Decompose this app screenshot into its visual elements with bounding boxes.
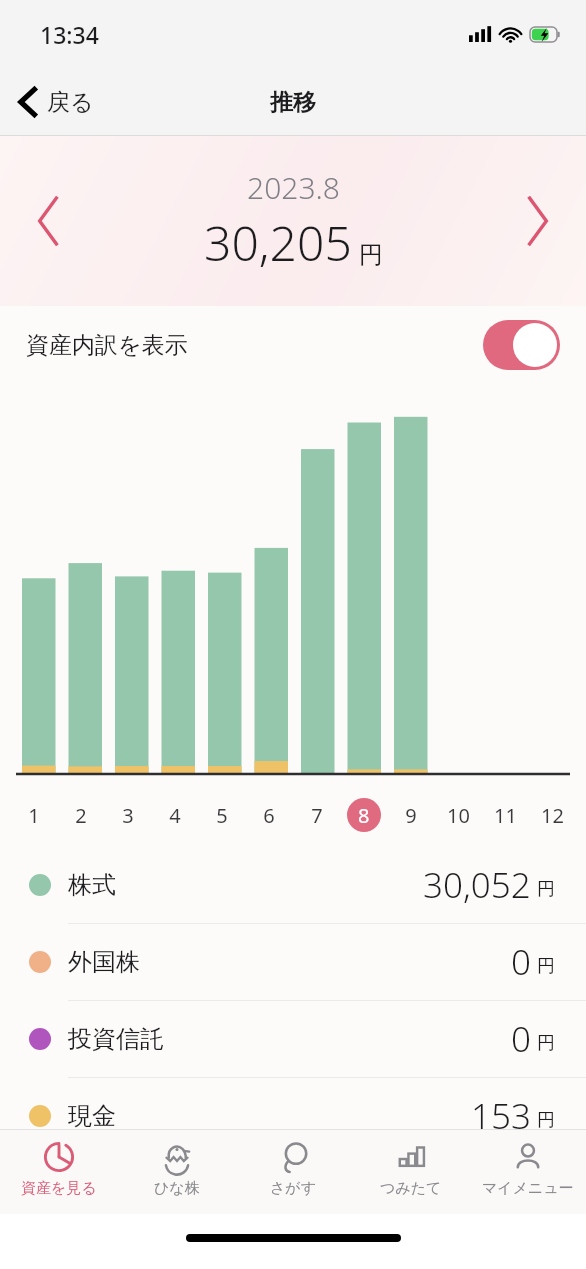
staticText: 円 (537, 1032, 555, 1055)
staticText: 10 (447, 802, 470, 829)
staticText: ひな株 (154, 1179, 200, 1198)
staticText: 4 (169, 802, 181, 829)
button[interactable]: Hina stocks (118, 1130, 235, 1214)
staticText: 戻る (47, 88, 94, 117)
button[interactable]: Accumulate (352, 1130, 469, 1214)
staticText: 30,052 (423, 861, 531, 909)
staticText: 現金 (68, 1101, 116, 1131)
other: Accumulate (394, 1140, 428, 1174)
staticText: さがす (270, 1179, 317, 1198)
staticText: 2 (75, 802, 87, 829)
other: Search (277, 1140, 311, 1174)
staticText: 投資信託 (68, 1024, 164, 1054)
staticText: マイメニュー (482, 1179, 574, 1198)
staticText: 153 (471, 1092, 531, 1140)
button[interactable]: My menu (469, 1130, 586, 1214)
button[interactable]: Search (235, 1130, 352, 1214)
staticText: 6 (263, 802, 275, 829)
button[interactable]: 株式 (0, 846, 586, 923)
button[interactable]: Previous month (16, 189, 80, 253)
button[interactable]: 外国株 (0, 923, 586, 1000)
other: View assets (42, 1140, 76, 1174)
staticText: 0 (511, 938, 531, 986)
staticText: 2023.8 (247, 167, 340, 208)
staticText: 外国株 (68, 947, 140, 977)
other: My menu (511, 1140, 545, 1174)
staticText: 9 (405, 802, 417, 829)
staticText: 5 (216, 802, 228, 829)
staticText: 30,205 (204, 210, 352, 275)
button[interactable]: 現金 (0, 1077, 586, 1154)
staticText: 8 (358, 802, 370, 829)
staticText: 推移 (270, 88, 316, 117)
staticText: 円 (537, 878, 555, 901)
button[interactable]: 戻る (10, 81, 102, 123)
staticText: 株式 (68, 870, 116, 900)
staticText: 7 (311, 802, 323, 829)
staticText: 円 (359, 240, 383, 270)
staticText: 13:34 (40, 19, 99, 50)
button[interactable]: 資産内訳を表示 (0, 306, 586, 384)
staticText: 円 (537, 1109, 555, 1132)
button[interactable]: View assets (0, 1130, 118, 1214)
staticText: 12 (541, 802, 564, 829)
button[interactable]: Next month (506, 189, 570, 253)
button[interactable]: 投資信託 (0, 1000, 586, 1077)
other: Hina stocks (160, 1140, 194, 1174)
staticText: 0 (511, 1015, 531, 1063)
staticText: 資産内訳を表示 (26, 331, 188, 360)
staticText: つみたて (380, 1179, 442, 1198)
staticText: 1 (28, 802, 40, 829)
staticText: 3 (122, 802, 134, 829)
staticText: 11 (494, 802, 517, 829)
staticText: 資産を見る (21, 1179, 97, 1198)
staticText: 円 (537, 955, 555, 978)
